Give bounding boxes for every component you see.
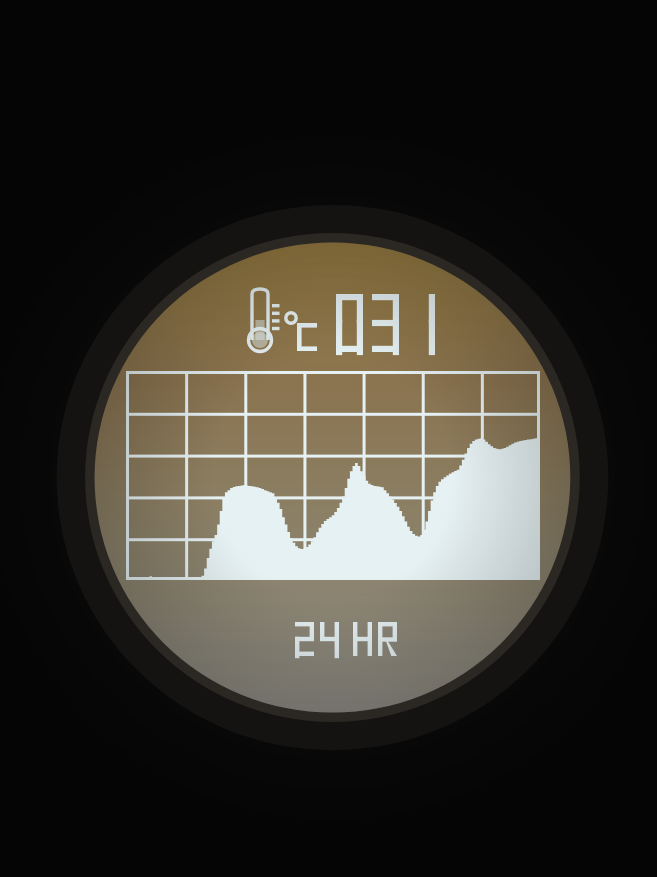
button[interactable]: Temperature history watch face, 31 degre…	[0, 0, 657, 877]
